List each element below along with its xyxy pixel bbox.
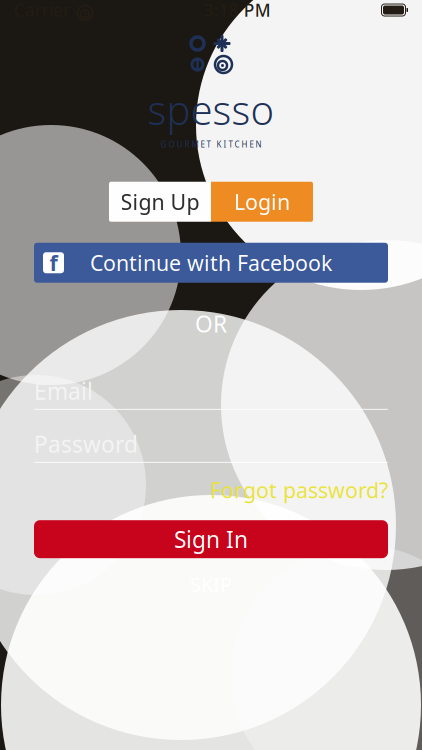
staticText: spesso: [147, 83, 274, 136]
button[interactable]: Sign Up: [109, 182, 211, 222]
staticText: Email: [34, 376, 93, 406]
staticText: f: [49, 249, 57, 277]
button[interactable]: Sign In: [34, 520, 388, 558]
button[interactable]: Login: [211, 182, 313, 222]
staticText: Continue with Facebook: [90, 249, 332, 277]
staticText: Sign In: [174, 524, 248, 554]
staticText: G O U R M E T K I T C H E N: [160, 139, 261, 150]
staticText: Sign Up: [120, 188, 199, 216]
staticText: Password: [34, 429, 138, 459]
staticText: 3:18 PM: [204, 0, 271, 21]
button[interactable]: Forgot password?: [210, 476, 388, 504]
staticText: OR: [195, 309, 227, 339]
staticText: Forgot password?: [210, 476, 388, 504]
staticText: Login: [234, 188, 290, 216]
button[interactable]: Continue with Facebook: [34, 243, 388, 283]
